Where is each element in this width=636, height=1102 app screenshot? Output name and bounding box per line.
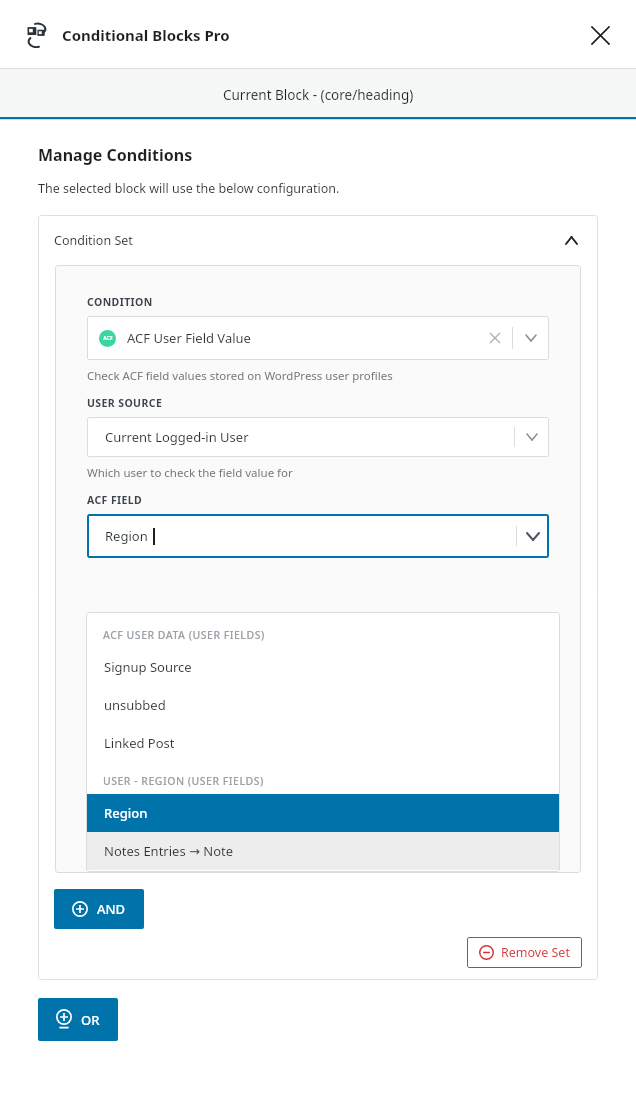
button[interactable]: Notes Entries → Note <box>86 832 560 870</box>
button[interactable]: Remove Set <box>467 937 582 968</box>
staticText: Remove Set <box>501 944 570 961</box>
staticText: OR <box>81 1011 100 1029</box>
other: Clear <box>482 325 508 351</box>
staticText: Region <box>104 804 148 822</box>
staticText: Conditional Blocks Pro <box>62 25 230 45</box>
other: Open user source list <box>515 417 549 457</box>
staticText: Manage Conditions <box>38 144 193 166</box>
staticText: Region <box>105 527 148 545</box>
button[interactable]: Region <box>87 514 549 558</box>
staticText: CONDITION <box>87 295 153 309</box>
other: Collapse <box>560 229 582 251</box>
button[interactable]: Linked Post <box>86 724 560 762</box>
staticText: Current Logged-in User <box>105 428 249 446</box>
staticText: ACF FIELD <box>87 493 143 507</box>
button[interactable]: ACF <box>87 316 549 360</box>
button[interactable]: Region <box>86 794 560 832</box>
button[interactable]: unsubbed <box>86 686 560 724</box>
staticText: Which user to check the field value for <box>87 465 293 481</box>
staticText: ACF USER DATA (USER FIELDS) <box>103 628 265 642</box>
staticText: ACF User Field Value <box>127 329 251 347</box>
other: Open ACF field list <box>517 514 549 558</box>
button[interactable]: AND <box>54 889 144 929</box>
staticText: AND <box>97 900 126 918</box>
staticText: Signup Source <box>104 658 192 676</box>
other: Open condition list <box>513 316 549 360</box>
staticText: ACF <box>103 335 113 342</box>
button[interactable]: Current Block - (core/heading) <box>0 69 636 120</box>
staticText: Check ACF field values stored on WordPre… <box>87 368 393 384</box>
button[interactable]: Close <box>578 13 622 57</box>
staticText: USER - REGION (USER FIELDS) <box>103 774 264 788</box>
staticText: Current Block - (core/heading) <box>223 86 414 104</box>
button[interactable]: Current Logged-in User <box>87 417 549 457</box>
button[interactable]: OR <box>38 998 118 1041</box>
staticText: Condition Set <box>54 232 133 249</box>
staticText: Notes Entries → Note <box>104 842 234 860</box>
button[interactable]: Condition Set <box>38 215 598 265</box>
button[interactable]: Signup Source <box>86 648 560 686</box>
staticText: Remove <box>110 836 158 853</box>
staticText: The selected block will use the below co… <box>38 180 340 197</box>
staticText: USER SOURCE <box>87 396 163 410</box>
staticText: Linked Post <box>104 734 175 752</box>
button[interactable]: Remove <box>87 834 158 855</box>
staticText: unsubbed <box>104 696 166 714</box>
